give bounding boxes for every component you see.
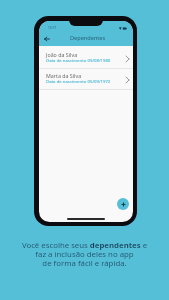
button[interactable]: João da Silva — [39, 48, 133, 69]
staticText: Data de nascimento 05/09/1972 — [46, 78, 111, 84]
button[interactable]: Voltar — [41, 33, 52, 44]
button[interactable]: Adicionar dependente — [117, 198, 129, 210]
staticText: Você escolhe seus dependentes e faz a in… — [0, 240, 169, 268]
staticText: 10:17 — [48, 26, 57, 30]
staticText: Dependentes — [70, 34, 106, 42]
button[interactable]: Marta da Silva — [39, 69, 133, 90]
staticText: Data de nascimento 09/08/1980 — [46, 57, 111, 63]
staticText: João da Silva — [46, 51, 78, 58]
staticText: Marta da Silva — [46, 72, 82, 79]
